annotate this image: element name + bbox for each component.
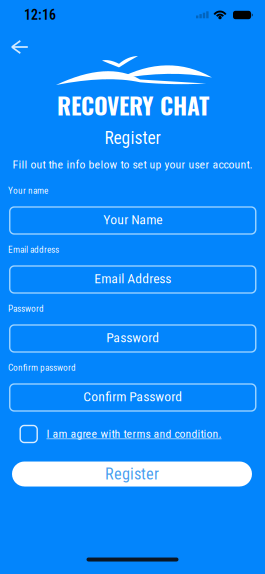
button[interactable]: Back — [10, 39, 30, 55]
button[interactable]: Agree to terms — [20, 425, 37, 442]
staticText: Your name — [8, 185, 48, 196]
staticText: RECOVERY CHAT — [57, 88, 209, 122]
button[interactable]: Confirm Password — [10, 384, 256, 411]
staticText: Your Name — [103, 211, 162, 227]
button[interactable]: Register — [12, 461, 252, 486]
staticText: Password — [106, 329, 159, 345]
staticText: Password — [8, 303, 44, 314]
button[interactable]: Email Address — [10, 266, 256, 293]
staticText: Confirm password — [8, 362, 76, 373]
staticText: Register — [105, 464, 159, 484]
staticText: Confirm Password — [83, 388, 182, 404]
button[interactable]: I am agree with terms and condition. — [46, 427, 221, 441]
staticText: Fill out the info below to set up your u… — [12, 158, 252, 171]
staticText: Email Address — [94, 270, 171, 286]
staticText: 12:16 — [24, 7, 56, 23]
button[interactable]: Your Name — [10, 207, 256, 234]
button[interactable]: Password — [10, 325, 256, 352]
staticText: Email address — [8, 244, 59, 255]
staticText: Register — [104, 128, 160, 148]
staticText: I am agree with terms and condition. — [46, 427, 221, 441]
